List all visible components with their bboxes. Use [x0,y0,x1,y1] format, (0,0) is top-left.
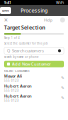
staticText: Q [7,48,10,53]
staticText: search by name or phone [4,55,39,59]
staticText: Step 1 of 4 [4,36,20,40]
button[interactable]: Hubert Aaron [0,93,68,103]
staticText: 9:41 [4,0,11,5]
staticText: Help [44,17,52,23]
staticText: Hubert Aaron [4,93,32,98]
button[interactable]: Hubert Aaron [0,83,68,93]
staticText: Hubert Aaron [4,83,32,88]
staticText: 555 0123 [4,89,19,92]
staticText: Processing [20,7,47,14]
staticText: LOGO [2,9,9,12]
staticText: Target Selection [4,24,45,31]
staticText: ✎ [61,96,64,100]
staticText: 555 0123 [4,99,19,102]
staticText: Search customers [12,48,44,53]
button[interactable]: Add New Customer [4,61,64,67]
staticText: Mayor Ali [4,73,22,78]
staticText: Select the customer for this job [4,42,48,45]
button[interactable]: Close [3,17,9,23]
staticText: RECENT CUSTOMERS [4,69,29,73]
staticText: ✎ [61,76,64,80]
button[interactable]: Mayor Ali [0,73,68,83]
staticText: ✎ [61,86,64,90]
staticText: Add New Customer [12,61,51,67]
staticText: 555 0123 [4,79,19,82]
staticText: × [4,16,8,24]
staticText: WiFi [56,0,64,5]
